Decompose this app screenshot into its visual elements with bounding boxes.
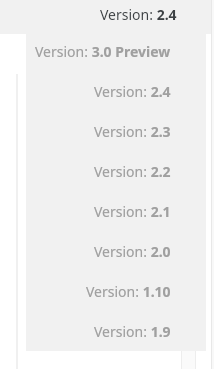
staticText: Version: 2.4 <box>100 5 177 24</box>
staticText: Version: 1.9 <box>94 322 171 341</box>
button[interactable]: Version: 2.3 <box>26 111 171 151</box>
staticText: Version: 2.2 <box>94 162 171 181</box>
staticText: Version: 2.4 <box>94 82 171 101</box>
button[interactable]: Version: 1.10 <box>26 271 171 311</box>
button[interactable]: Version: 3.0 Preview <box>26 31 171 71</box>
button[interactable]: Horizontal scroll bar <box>181 351 196 369</box>
button[interactable]: Version: 2.2 <box>26 151 171 191</box>
button[interactable]: Version: 2.4 <box>0 0 214 29</box>
staticText: Version: 2.1 <box>94 202 171 221</box>
button[interactable]: Version: 1.9 <box>26 311 171 351</box>
staticText: Version: 3.0 Preview <box>35 42 171 61</box>
button[interactable]: Version: 2.4 <box>26 71 171 111</box>
staticText: Version: 2.0 <box>94 242 171 261</box>
button[interactable]: Version: 2.1 <box>26 191 171 231</box>
button[interactable]: Version: 2.0 <box>26 231 171 271</box>
staticText: Version: 1.10 <box>86 282 171 301</box>
staticText: Version: 2.3 <box>94 122 171 141</box>
